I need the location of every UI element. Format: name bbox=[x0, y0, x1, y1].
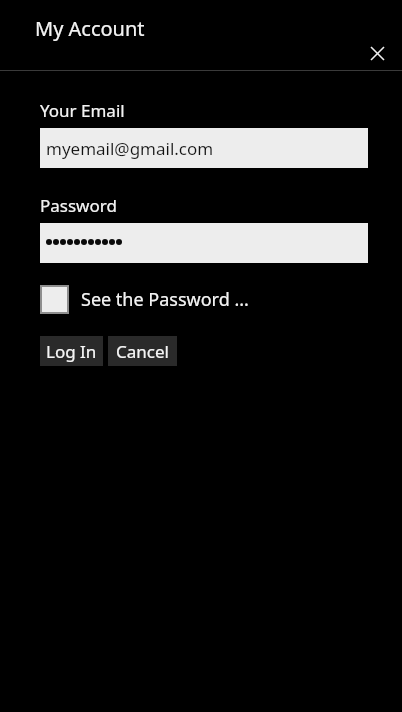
button[interactable] bbox=[40, 223, 368, 263]
staticText: Password bbox=[40, 194, 117, 217]
staticText: See the Password ... bbox=[81, 287, 249, 312]
button[interactable]: Close bbox=[363, 39, 391, 67]
staticText: My Account bbox=[35, 15, 145, 42]
button[interactable]: See the Password ... bbox=[40, 285, 249, 314]
staticText: Your Email bbox=[40, 99, 125, 122]
staticText: myemail@gmail.com bbox=[46, 137, 214, 160]
button[interactable]: Cancel bbox=[108, 336, 177, 366]
button[interactable]: Log In bbox=[40, 336, 103, 366]
staticText: Cancel bbox=[116, 340, 169, 363]
button[interactable]: myemail@gmail.com bbox=[40, 128, 368, 168]
staticText: Log In bbox=[46, 340, 97, 363]
